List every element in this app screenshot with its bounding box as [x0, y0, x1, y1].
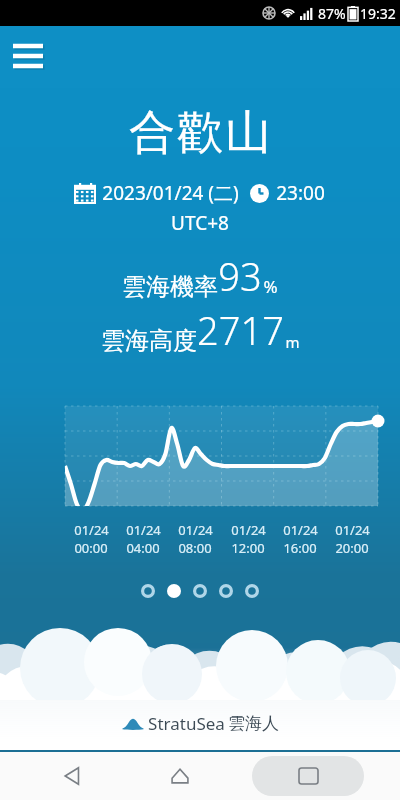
staticText: 87%: [318, 4, 346, 23]
staticText: 19:32: [360, 4, 396, 23]
staticText: 93: [218, 250, 262, 302]
button[interactable]: Recent apps: [252, 756, 364, 796]
staticText: 01/24: [283, 521, 318, 539]
staticText: 20:00: [335, 539, 369, 557]
staticText: 2023/01/24 (二): [102, 180, 239, 206]
staticText: 04:00: [126, 539, 160, 557]
staticText: 01/24: [126, 521, 161, 539]
staticText: 01/24: [335, 521, 370, 539]
staticText: 12:00: [231, 539, 265, 557]
staticText: 23:00: [276, 180, 325, 206]
staticText: 雲海高度: [101, 326, 197, 356]
button[interactable]: Page 2: [161, 578, 187, 604]
button[interactable]: Home: [144, 754, 216, 798]
button[interactable]: StratuSea: [0, 712, 400, 735]
staticText: 16:00: [283, 539, 317, 557]
staticText: 01/24: [231, 521, 266, 539]
staticText: 01/24: [178, 521, 213, 539]
staticText: 雲海人: [228, 713, 279, 734]
staticText: UTC+8: [171, 210, 229, 236]
button[interactable]: Menu: [6, 34, 50, 78]
staticText: 01/24: [74, 521, 109, 539]
staticText: %: [263, 275, 278, 298]
staticText: m: [285, 332, 300, 352]
staticText: StratuSea: [148, 712, 225, 735]
button[interactable]: Page 1: [135, 578, 161, 604]
button[interactable]: Page 5: [239, 578, 265, 604]
button[interactable]: Back: [36, 754, 108, 798]
staticText: 00:00: [74, 539, 108, 557]
staticText: 合歡山: [128, 104, 272, 162]
staticText: 08:00: [178, 539, 212, 557]
button[interactable]: Page 3: [187, 578, 213, 604]
staticText: 2717: [197, 304, 284, 356]
button[interactable]: Page 4: [213, 578, 239, 604]
staticText: 雲海機率: [122, 272, 218, 302]
